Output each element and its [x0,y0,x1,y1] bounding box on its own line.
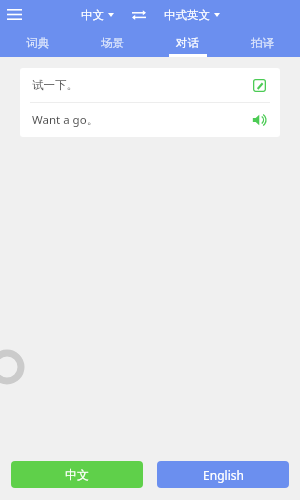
button[interactable]: 场景 [75,29,150,57]
staticText: 试一下。 [32,78,78,92]
button[interactable]: 词典 [0,29,75,57]
button[interactable]: 试一下。 [20,68,280,102]
button[interactable]: Edit [248,74,270,96]
button[interactable]: 拍译 [225,29,300,57]
staticText: Want a go。 [32,112,99,128]
staticText: 对话 [176,36,199,50]
staticText: 中文 [65,467,89,482]
button[interactable]: 对话 [150,29,225,57]
button[interactable]: English [157,461,289,488]
staticText: 中文 [81,8,104,22]
staticText: 拍译 [251,36,274,50]
staticText: 词典 [26,36,49,50]
button[interactable]: Menu [0,0,29,29]
button[interactable]: Play audio [248,109,270,131]
staticText: 中式英文 [164,8,210,22]
button[interactable]: 中式英文 [162,6,222,24]
button[interactable]: Swap languages [128,4,150,26]
staticText: English [203,467,244,483]
button[interactable]: Want a go。 [20,103,280,137]
staticText: 场景 [101,36,124,50]
button[interactable]: 中文 [79,6,116,24]
button[interactable]: 中文 [11,461,143,488]
